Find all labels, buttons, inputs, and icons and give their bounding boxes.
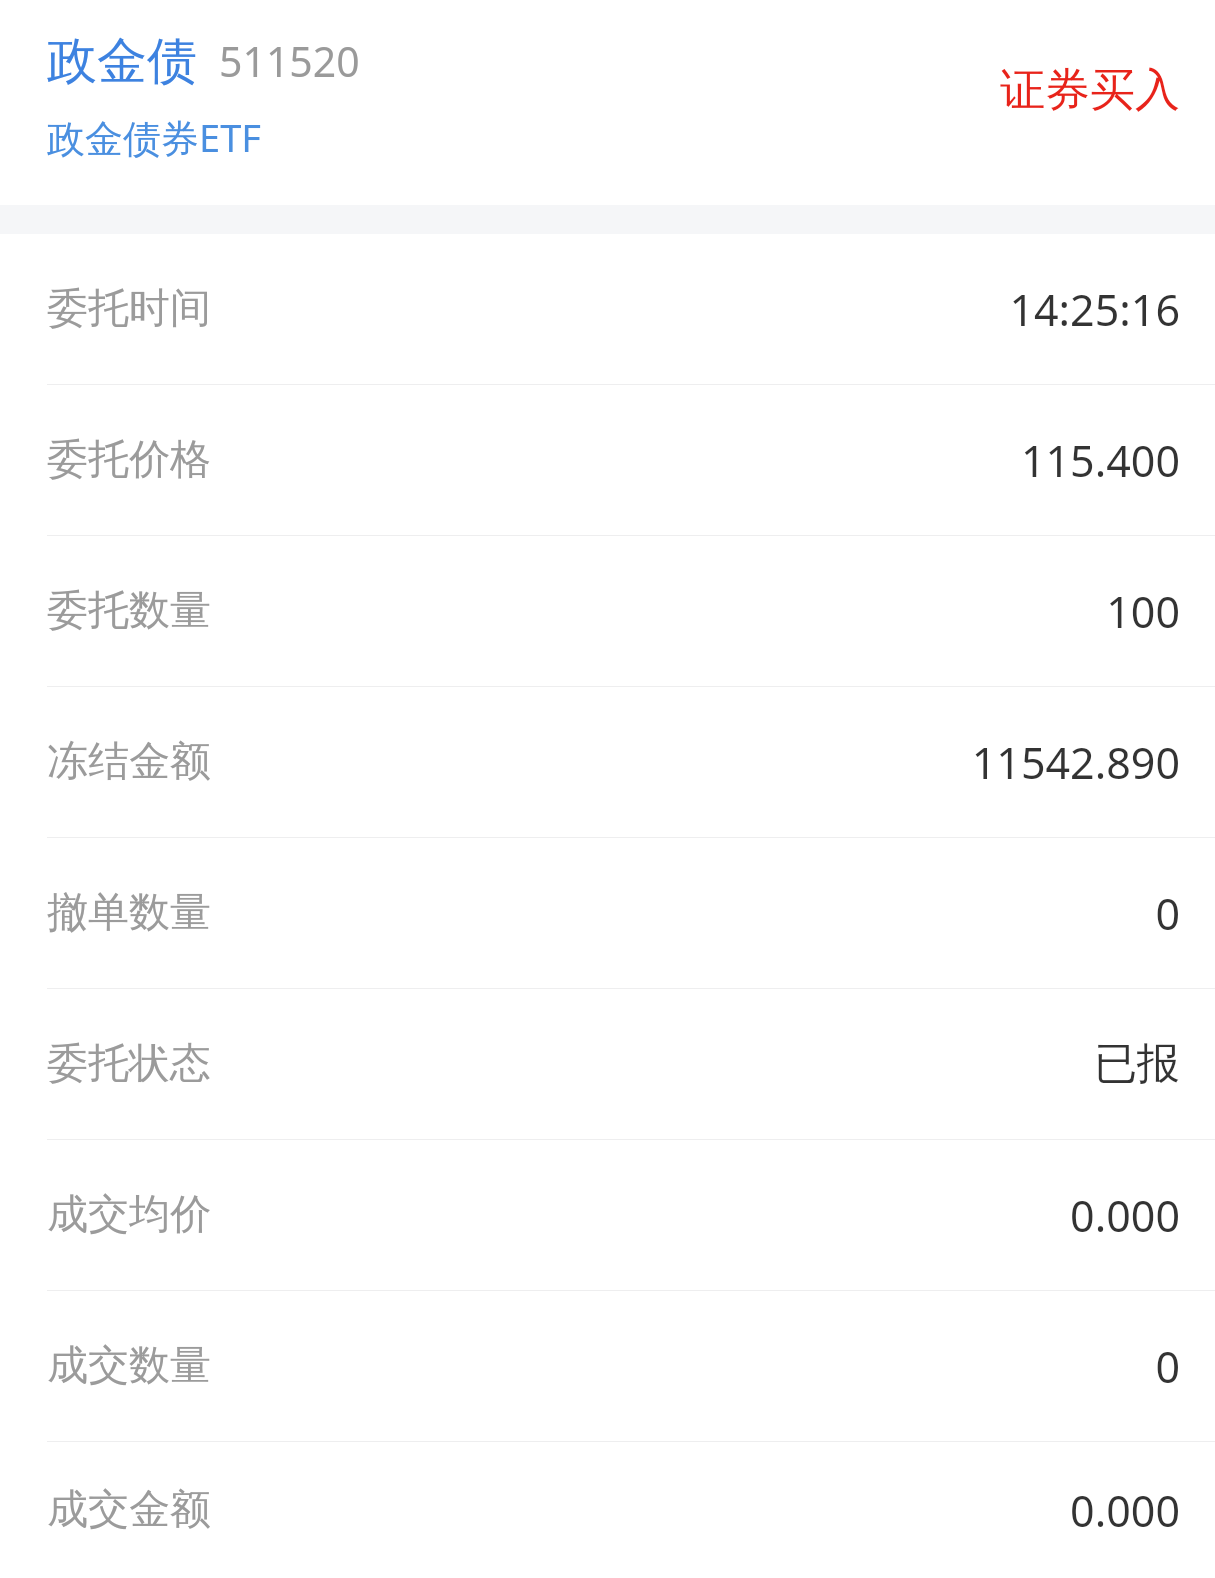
staticText: 115.400 [1020, 431, 1180, 490]
staticText: 成交数量 [47, 1340, 211, 1392]
staticText: 政金债券ETF [47, 111, 261, 163]
staticText: 0.000 [1070, 1186, 1180, 1245]
staticText: 0 [1155, 1337, 1180, 1396]
staticText: 已报 [1094, 1037, 1180, 1091]
button[interactable]: 委托数量 [0, 536, 1215, 687]
staticText: 成交金额 [47, 1484, 211, 1536]
staticText: 委托时间 [47, 283, 211, 335]
staticText: 委托数量 [47, 585, 211, 637]
button[interactable]: 成交金额 [0, 1442, 1215, 1578]
staticText: 0 [1155, 884, 1180, 943]
staticText: 委托状态 [47, 1038, 211, 1090]
staticText: 撤单数量 [47, 887, 211, 939]
button[interactable]: 冻结金额 [0, 687, 1215, 838]
staticText: 511520 [219, 33, 360, 89]
staticText: 冻结金额 [47, 736, 211, 788]
button[interactable]: 成交均价 [0, 1140, 1215, 1291]
button[interactable]: 委托时间 [0, 234, 1215, 385]
staticText: 14:25:16 [1009, 280, 1180, 339]
staticText: 政金债 [47, 30, 197, 93]
button[interactable]: 委托状态 [0, 989, 1215, 1140]
button[interactable]: 证券买入 [1000, 62, 1180, 119]
button[interactable]: 成交数量 [0, 1291, 1215, 1442]
button[interactable]: 撤单数量 [0, 838, 1215, 989]
staticText: 11542.890 [971, 733, 1180, 792]
staticText: 成交均价 [47, 1189, 211, 1241]
staticText: 100 [1106, 582, 1180, 641]
button[interactable]: 委托价格 [0, 385, 1215, 536]
staticText: 证券买入 [1000, 62, 1180, 119]
staticText: 委托价格 [47, 434, 211, 486]
staticText: 0.000 [1070, 1481, 1180, 1540]
